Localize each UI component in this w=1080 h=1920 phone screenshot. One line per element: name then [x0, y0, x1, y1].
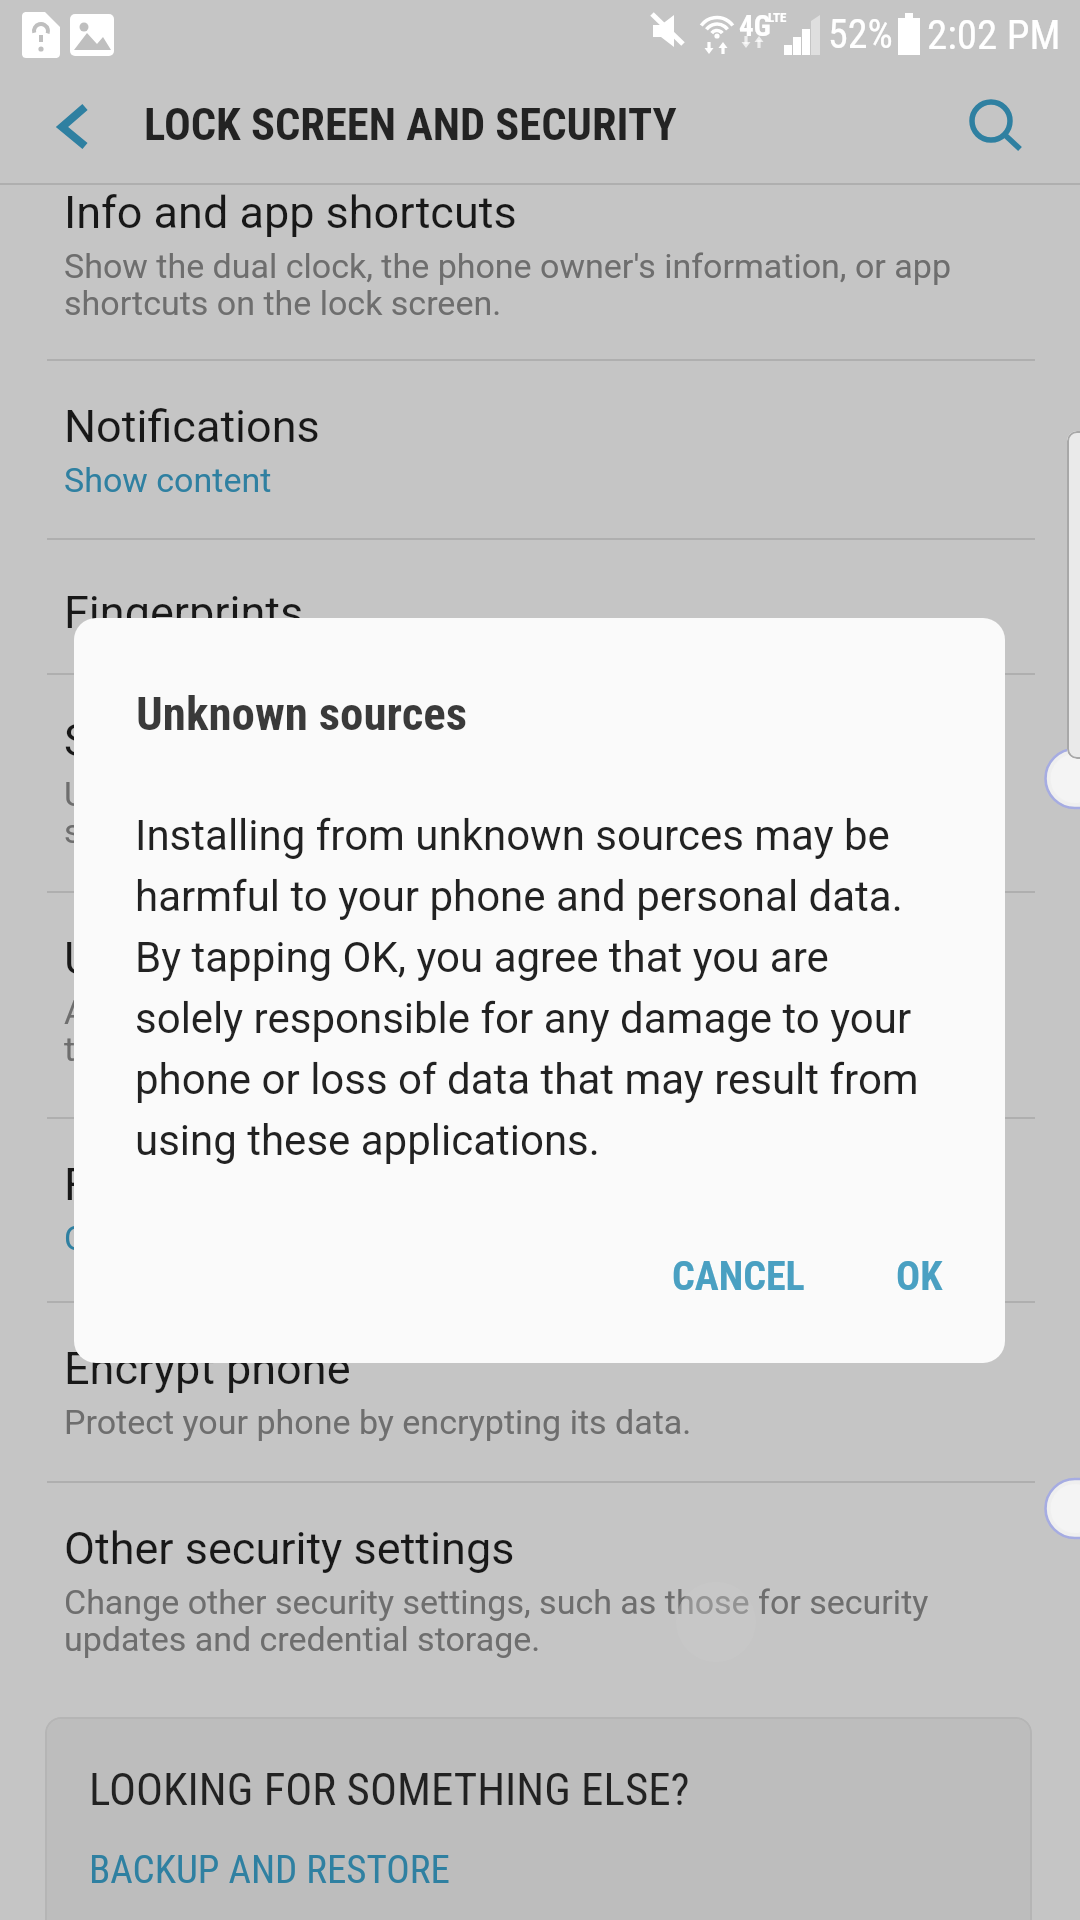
button[interactable]: CANCEL — [645, 1221, 832, 1331]
staticText: Other security settings — [64, 1522, 515, 1575]
staticText: Encrypt phone — [64, 1342, 351, 1395]
staticText: Unknown sources — [136, 686, 468, 741]
staticText: OK — [896, 1253, 943, 1300]
staticText: Fingerprints — [64, 586, 304, 639]
staticText: Samsung Pass — [64, 714, 364, 767]
staticText: Find My Mobile — [64, 1158, 369, 1211]
button[interactable]: Unknown sources — [0, 891, 1080, 1117]
button[interactable]: Toggle — [1040, 729, 1080, 829]
staticText: 4G — [739, 9, 771, 43]
button[interactable]: Toggle — [1040, 1459, 1080, 1559]
staticText: LOCK SCREEN AND SECURITY — [144, 99, 677, 151]
staticText: Installing from unknown sources may be h… — [135, 811, 935, 1166]
staticText: 52% — [828, 11, 893, 58]
button[interactable]: Fingerprints — [0, 538, 1080, 673]
staticText: LOOKING FOR SOMETHING ELSE? — [89, 1763, 690, 1816]
button[interactable]: Search — [935, 70, 1047, 182]
staticText: 2:02 PM — [927, 11, 1061, 59]
staticText: Info and app shortcuts — [64, 186, 517, 239]
staticText: Show content — [64, 460, 272, 500]
button[interactable]: LOOKING FOR SOMETHING ELSE? — [45, 1717, 1032, 1920]
button[interactable]: BACKUP AND RESTORE — [89, 1847, 450, 1893]
button[interactable]: OK — [866, 1221, 972, 1331]
button[interactable]: Info and app shortcuts — [0, 183, 1080, 359]
staticText: Allow installation of non-market apps fr… — [64, 992, 1010, 1069]
staticText: On — [64, 1218, 107, 1258]
button[interactable]: Other security settings — [0, 1481, 1080, 1685]
button[interactable]: Samsung Pass — [0, 673, 1080, 891]
staticText: Protect your phone by encrypting its dat… — [64, 1402, 692, 1442]
staticText: Change other security settings, such as … — [64, 1582, 1010, 1659]
button[interactable]: Notifications — [0, 359, 1080, 538]
button[interactable]: Find My Mobile — [0, 1117, 1080, 1301]
staticText: Use your biometric data to sign in to we… — [64, 774, 1010, 851]
staticText: Unknown sources — [64, 932, 421, 985]
staticText: Notifications — [64, 400, 320, 453]
staticText: Show the dual clock, the phone owner's i… — [64, 246, 1010, 323]
button[interactable]: Encrypt phone — [0, 1301, 1080, 1481]
staticText: CANCEL — [672, 1253, 805, 1300]
button[interactable]: Navigate up — [4, 70, 116, 182]
staticText: LTE — [768, 10, 787, 25]
